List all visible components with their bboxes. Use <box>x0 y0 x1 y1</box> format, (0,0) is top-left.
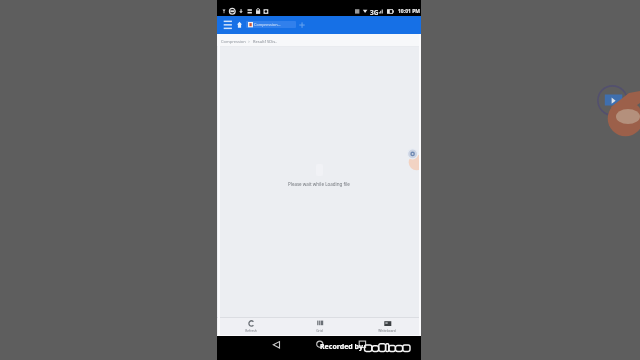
button[interactable]: Compression... <box>246 21 296 28</box>
staticText: > <box>248 39 251 44</box>
button[interactable]: Refresh <box>217 318 285 333</box>
staticText: Please wait while Loading file <box>288 181 350 187</box>
staticText: Whiteboard <box>378 329 396 333</box>
button[interactable]: Recording controls <box>407 148 419 160</box>
staticText: Refresh <box>245 329 257 333</box>
button[interactable]: New tab <box>298 21 306 29</box>
staticText: Result15Dis.. <box>253 39 278 44</box>
button[interactable]: Whiteboard <box>353 318 421 333</box>
staticText: Recorded by <box>320 342 363 352</box>
staticText: 10:01 PM <box>398 8 420 15</box>
button[interactable]: Home <box>233 16 246 34</box>
button[interactable]: Home <box>311 338 329 352</box>
button[interactable]: Menu <box>221 16 237 34</box>
staticText: Compression <box>221 39 246 44</box>
button[interactable]: Back <box>268 338 286 352</box>
button[interactable]: Recent apps <box>353 338 371 352</box>
staticText: 3G <box>370 8 379 17</box>
button[interactable]: Grid <box>285 318 353 333</box>
staticText: Grid <box>316 329 323 333</box>
staticText: Compression... <box>254 22 281 27</box>
